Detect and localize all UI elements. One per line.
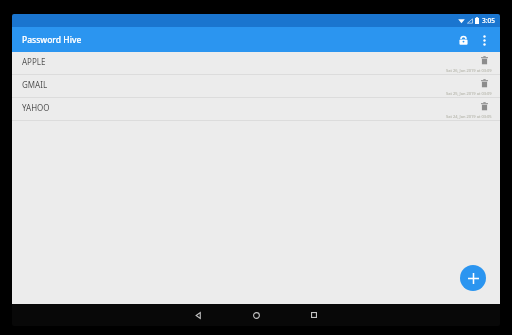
button[interactable]: Delete YAHOO xyxy=(477,99,492,114)
staticText: Password Hive xyxy=(22,34,82,46)
button[interactable]: Back xyxy=(183,304,213,326)
button[interactable]: Recent apps xyxy=(299,304,329,326)
button[interactable]: YAHOO xyxy=(12,98,500,121)
staticText: APPLE xyxy=(22,56,46,67)
staticText: Sat 24, Jan 2019 at 03:05 xyxy=(446,114,492,119)
staticText: GMAIL xyxy=(22,79,48,90)
staticText: Sat 25, Jan 2019 at 03:09 xyxy=(446,91,492,96)
staticText: Sat 26, Jan 2019 at 03:09 xyxy=(446,68,492,73)
button[interactable]: Lock xyxy=(452,29,474,51)
staticText: 3:05 xyxy=(482,16,495,25)
button[interactable]: Delete APPLE xyxy=(477,53,492,68)
button[interactable]: GMAIL xyxy=(12,75,500,98)
button[interactable]: Home xyxy=(241,304,271,326)
button[interactable]: More options xyxy=(474,30,494,50)
button[interactable]: APPLE xyxy=(12,52,500,75)
button[interactable]: Delete GMAIL xyxy=(477,76,492,91)
staticText: YAHOO xyxy=(22,102,50,113)
button[interactable]: Add password xyxy=(460,265,486,291)
